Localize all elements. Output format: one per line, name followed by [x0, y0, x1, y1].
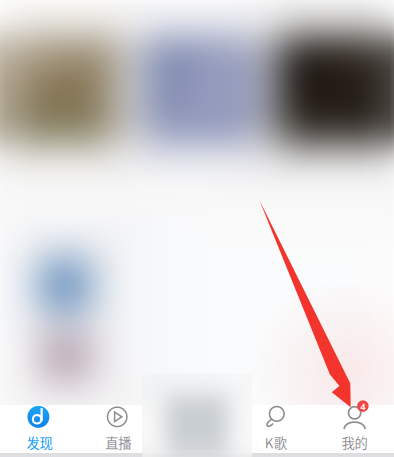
staticText: K歌 [265, 433, 287, 452]
staticText: 4 [360, 400, 365, 412]
button[interactable]: 发现 [0, 404, 79, 452]
button[interactable]: K歌 [236, 404, 315, 452]
button[interactable]: 4 [315, 404, 394, 452]
staticText: 发现 [26, 433, 52, 452]
button[interactable]: 直播 [79, 404, 158, 452]
staticText: 我的 [342, 433, 368, 452]
staticText: 直播 [105, 433, 131, 452]
